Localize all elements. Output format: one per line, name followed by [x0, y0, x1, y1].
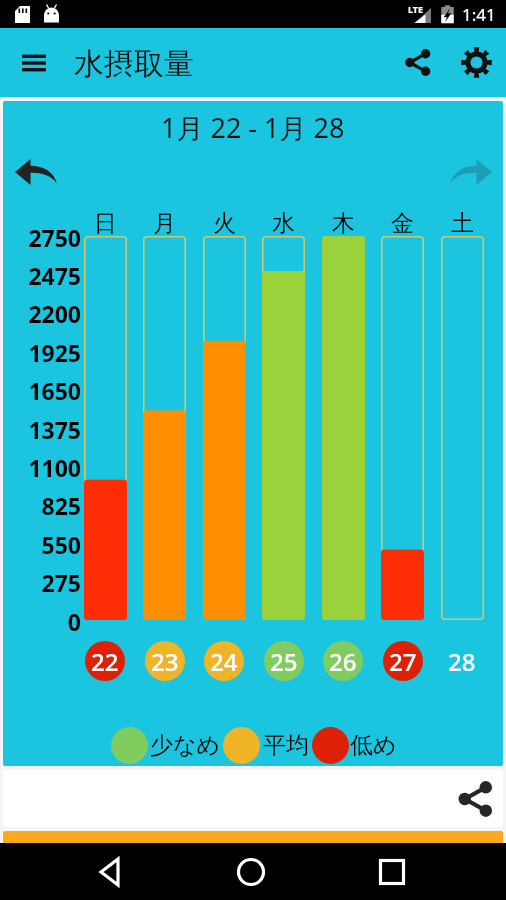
button[interactable]: Share [452, 776, 498, 822]
staticText: 1月 22 - 1月 28 [161, 109, 345, 146]
staticText: 1375 [3, 414, 81, 445]
staticText: 2750 [3, 222, 81, 253]
button[interactable]: 低め [312, 727, 349, 764]
staticText: 日 [84, 209, 127, 238]
staticText: 0 [3, 606, 81, 637]
staticText: 水摂取量 [74, 45, 194, 83]
staticText: 275 [3, 567, 81, 598]
staticText: 1650 [3, 375, 81, 406]
staticText: 低め [350, 731, 397, 760]
staticText: 825 [3, 490, 81, 521]
button[interactable]: Back [82, 844, 138, 900]
staticText: 27 [389, 645, 417, 678]
staticText: 金 [381, 209, 424, 238]
staticText: 1925 [3, 337, 81, 368]
button[interactable]: Recent apps [364, 844, 420, 900]
staticText: 22 [91, 645, 119, 678]
staticText: 土 [441, 209, 484, 238]
staticText: 少なめ [150, 731, 221, 760]
staticText: 24 [210, 645, 238, 678]
button[interactable]: Share [394, 39, 441, 86]
staticText: 550 [3, 529, 81, 560]
button[interactable]: Next week [443, 145, 503, 201]
staticText: 月 [143, 209, 186, 238]
staticText: 火 [203, 209, 246, 238]
staticText: 2475 [3, 260, 81, 291]
button[interactable]: 25 [264, 641, 304, 681]
staticText: 1100 [3, 452, 81, 483]
staticText: 23 [151, 645, 179, 678]
staticText: 2200 [3, 298, 81, 329]
staticText: 水 [262, 209, 305, 238]
button[interactable]: 水 [3, 831, 503, 851]
staticText: 25 [270, 645, 298, 678]
button[interactable]: Home [223, 844, 279, 900]
staticText: LTE [408, 3, 424, 15]
button[interactable]: 22 [85, 641, 125, 681]
button[interactable]: Settings [453, 39, 500, 86]
button[interactable]: Open navigation menu [10, 39, 58, 87]
button[interactable]: 28 [442, 641, 482, 681]
button[interactable]: 少なめ [111, 727, 148, 764]
button[interactable]: 27 [383, 641, 423, 681]
staticText: 28 [448, 645, 476, 678]
button[interactable]: 24 [204, 641, 244, 681]
staticText: 水 [46, 841, 68, 851]
button[interactable]: 23 [145, 641, 185, 681]
button[interactable]: 26 [323, 641, 363, 681]
staticText: 26 [329, 645, 357, 678]
button[interactable]: Previous week [3, 145, 63, 201]
staticText: 平均 [263, 731, 309, 760]
staticText: 木 [322, 209, 365, 238]
button[interactable]: 平均 [223, 727, 260, 764]
staticText: 1:41 [462, 3, 496, 26]
